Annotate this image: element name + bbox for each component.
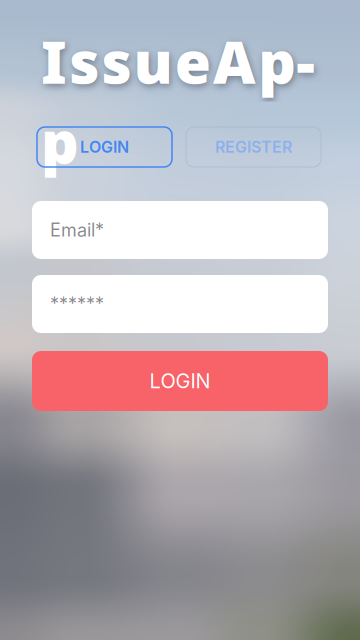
staticText: IssueApp <box>41 21 336 101</box>
staticText: REGISTER <box>215 137 292 157</box>
button[interactable]: REGISTER <box>186 127 321 167</box>
staticText: LOGIN <box>80 137 129 157</box>
button[interactable]: LOGIN <box>37 127 172 167</box>
staticText: ****** <box>50 293 104 315</box>
staticText: Email* <box>50 219 104 241</box>
button[interactable]: LOGIN <box>32 351 328 411</box>
staticText: LOGIN <box>149 369 210 393</box>
